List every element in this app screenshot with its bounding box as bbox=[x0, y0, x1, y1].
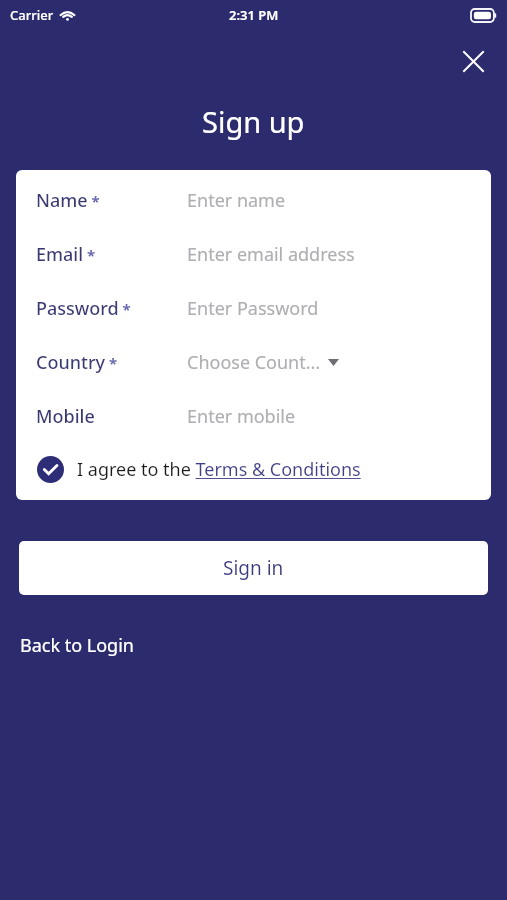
staticText: Back to Login bbox=[20, 633, 134, 658]
button[interactable]: Password * bbox=[16, 281, 491, 335]
staticText: Password * bbox=[36, 296, 131, 321]
staticText: Mobile bbox=[36, 404, 95, 429]
staticText: Enter Password bbox=[187, 296, 319, 321]
button[interactable]: Back to Login bbox=[12, 627, 142, 664]
button[interactable]: I agree to the Terms & Conditions bbox=[16, 443, 491, 495]
staticText: Choose Count... bbox=[187, 350, 321, 375]
button[interactable]: Country * bbox=[16, 335, 491, 389]
button[interactable]: Close bbox=[452, 40, 494, 82]
staticText: Email * bbox=[36, 242, 96, 267]
button[interactable]: Email * bbox=[16, 227, 491, 281]
staticText: Enter name bbox=[187, 188, 286, 213]
button[interactable]: Sign in bbox=[19, 541, 488, 595]
staticText: Enter email address bbox=[187, 242, 355, 267]
staticText: Sign in bbox=[223, 555, 284, 581]
staticText: Carrier bbox=[10, 6, 54, 24]
staticText: Name * bbox=[36, 188, 100, 213]
staticText: Enter mobile bbox=[187, 404, 296, 429]
staticText: Sign up bbox=[202, 102, 305, 141]
button[interactable]: Name * bbox=[16, 173, 491, 227]
button[interactable]: Mobile bbox=[16, 389, 491, 443]
staticText: I agree to the Terms & Conditions bbox=[77, 457, 361, 482]
staticText: Country * bbox=[36, 350, 118, 375]
staticText: 2:31 PM bbox=[229, 6, 279, 24]
